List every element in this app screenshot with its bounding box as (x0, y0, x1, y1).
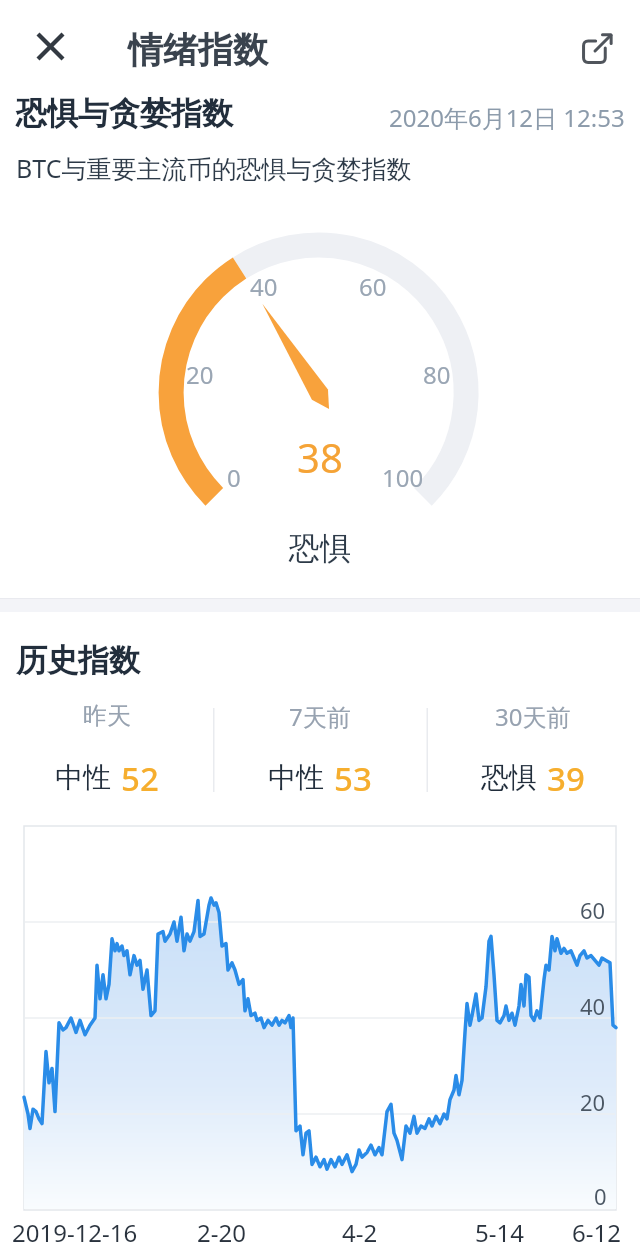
staticText: 100 (382, 461, 424, 494)
staticText: 40 (250, 270, 278, 303)
staticText: 2019-12-16 (12, 1216, 138, 1248)
staticText: 恐惧 (289, 529, 351, 568)
staticText: 60 (359, 270, 387, 303)
staticText: 恐惧 (481, 760, 537, 795)
button[interactable]: 恐惧 (428, 756, 638, 798)
staticText: 53 (334, 756, 372, 798)
staticText: BTC与重要主流币的恐惧与贪婪指数 (16, 151, 412, 185)
staticText: 中性 (55, 760, 111, 795)
staticText: 38 (297, 430, 343, 482)
staticText: 2-20 (197, 1216, 246, 1248)
staticText: 恐惧与贪婪指数 (16, 94, 233, 133)
staticText: 2020年6月12日 12:53 (389, 101, 625, 134)
staticText: 情绪指数 (128, 28, 268, 72)
staticText: 7天前 (289, 700, 351, 733)
staticText: 20 (186, 358, 214, 391)
staticText: 39 (547, 756, 585, 798)
staticText: 中性 (268, 760, 324, 795)
staticText: 52 (121, 756, 159, 798)
staticText: 20 (580, 1087, 606, 1117)
button[interactable] (26, 22, 74, 70)
staticText: 80 (423, 358, 451, 391)
staticText: 历史指数 (16, 641, 140, 680)
staticText: 昨天 (83, 701, 131, 731)
button[interactable]: 中性 (2, 756, 212, 798)
staticText: 0 (594, 1181, 607, 1211)
staticText: 30天前 (495, 700, 571, 733)
button[interactable]: 中性 (215, 756, 425, 798)
staticText: 60 (580, 895, 606, 925)
staticText: 6-12 (572, 1216, 621, 1248)
staticText: 40 (580, 991, 606, 1021)
staticText: 0 (227, 461, 241, 494)
staticText: 5-14 (475, 1216, 524, 1248)
button[interactable] (572, 23, 622, 73)
staticText: 4-2 (342, 1216, 378, 1248)
